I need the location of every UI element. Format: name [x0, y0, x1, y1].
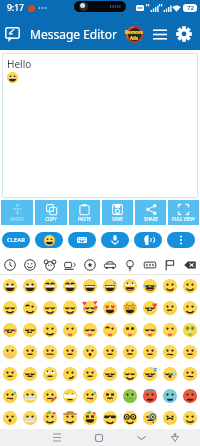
button[interactable]: Emoji 35 [100, 341, 120, 363]
button[interactable]: FULL VIEW [168, 200, 199, 225]
button[interactable]: Emoji 61 [20, 407, 40, 429]
button[interactable]: Emoji 66 [120, 407, 140, 429]
button[interactable]: Emoji 18 [160, 297, 180, 319]
button[interactable]: Emoji 41 [20, 363, 40, 385]
button[interactable]: Emoji 4 [80, 275, 100, 297]
button[interactable]: Emoji 45 [100, 363, 120, 385]
button[interactable]: Assistant [164, 429, 186, 446]
button[interactable]: Backspace [180, 257, 200, 273]
button[interactable]: Emoji 60 [0, 407, 20, 429]
button[interactable]: Emoji 1 [20, 275, 40, 297]
button[interactable]: Back [130, 429, 152, 446]
button[interactable]: Emoji 62 [40, 407, 60, 429]
button[interactable]: Emoji 14 [80, 297, 100, 319]
button[interactable]: Emoji 32 [40, 341, 60, 363]
button[interactable]: Emoji 54 [80, 385, 100, 407]
button[interactable]: Emoji 33 [60, 341, 80, 363]
button[interactable]: Emoji 6 [120, 275, 140, 297]
button[interactable]: Emoji 55 [100, 385, 120, 407]
button[interactable]: Emoji 16 [120, 297, 140, 319]
button[interactable]: Recent [0, 257, 20, 273]
button[interactable]: Animals [40, 257, 60, 273]
button[interactable]: Keyboard [68, 232, 96, 248]
button[interactable]: Emoji 21 [20, 319, 40, 341]
button[interactable]: Emoji 28 [160, 319, 180, 341]
button[interactable]: Emoji 11 [20, 297, 40, 319]
button[interactable]: Emoji 49 [180, 363, 200, 385]
button[interactable]: Emoji 0 [0, 275, 20, 297]
button[interactable]: Home [88, 429, 110, 446]
staticText: 9:17 [7, 2, 24, 14]
button[interactable]: PASTE [69, 200, 100, 225]
button[interactable]: Emoji 37 [140, 341, 160, 363]
button[interactable]: SAVE [102, 200, 133, 225]
button[interactable]: Emoji 23 [60, 319, 80, 341]
button[interactable]: Emoji 5 [100, 275, 120, 297]
button[interactable]: Emoji 48 [160, 363, 180, 385]
button[interactable]: Emoji 63 [60, 407, 80, 429]
button[interactable]: COPY [35, 200, 67, 225]
button[interactable]: Emoji 30 [0, 341, 20, 363]
button[interactable]: Emoji 10 [0, 297, 20, 319]
button[interactable]: Sports [80, 257, 100, 273]
button[interactable]: Emoji 3 [60, 275, 80, 297]
button[interactable]: Emoji 42 [40, 363, 60, 385]
button[interactable]: Emoji 56 [120, 385, 140, 407]
button[interactable]: Emoji 58 [160, 385, 180, 407]
button[interactable]: Emoji 43 [60, 363, 80, 385]
button[interactable]: Emoji 65 [100, 407, 120, 429]
button[interactable]: Emoji 34 [80, 341, 100, 363]
button[interactable]: Emoji 50 [0, 385, 20, 407]
button[interactable]: Emoji 52 [40, 385, 60, 407]
button[interactable]: Emoji 39 [180, 341, 200, 363]
button[interactable]: Emoji 26 [120, 319, 140, 341]
button[interactable]: Settings [173, 23, 195, 45]
button[interactable]: Emoji 51 [20, 385, 40, 407]
button[interactable]: Flags [160, 257, 180, 273]
button[interactable]: Emoji 44 [80, 363, 100, 385]
button[interactable]: Emoji 64 [80, 407, 100, 429]
button[interactable]: Emoji 12 [40, 297, 60, 319]
button[interactable]: Emoji 2 [40, 275, 60, 297]
button[interactable]: Menu [150, 24, 170, 44]
button[interactable]: Emoji 20 [0, 319, 20, 341]
button[interactable]: Recents [46, 429, 68, 446]
button[interactable]: CLEAR [2, 232, 30, 248]
button[interactable]: Emoji 15 [100, 297, 120, 319]
button[interactable]: Smileys [20, 257, 40, 273]
button[interactable]: Travel [100, 257, 120, 273]
button[interactable]: Remove Ads [125, 25, 144, 44]
button[interactable]: Emoji 25 [100, 319, 120, 341]
button[interactable]: Emoji 68 [160, 407, 180, 429]
button[interactable]: Emoji [35, 232, 63, 248]
button[interactable]: Emoji 22 [40, 319, 60, 341]
button[interactable]: Emoji 57 [140, 385, 160, 407]
button[interactable]: Emoji 46 [120, 363, 140, 385]
button[interactable]: Undo [1, 200, 33, 225]
button[interactable]: Emoji 17 [140, 297, 160, 319]
button[interactable]: Emoji 53 [60, 385, 80, 407]
button[interactable]: Emoji 7 [140, 275, 160, 297]
button[interactable]: Emoji 31 [20, 341, 40, 363]
button[interactable]: Food [60, 257, 80, 273]
button[interactable]: Emoji 9 [180, 275, 200, 297]
button[interactable]: More options [167, 232, 195, 248]
button[interactable]: Emoji 59 [180, 385, 200, 407]
button[interactable]: Emoji 69 [180, 407, 200, 429]
button[interactable]: Emoji 38 [160, 341, 180, 363]
button[interactable]: Emoji 29 [180, 319, 200, 341]
button[interactable]: Text to speech [134, 232, 162, 248]
button[interactable]: Emoji 40 [0, 363, 20, 385]
button[interactable]: Emoji 27 [140, 319, 160, 341]
button[interactable]: Emoji 36 [120, 341, 140, 363]
button[interactable]: Voice input [101, 232, 129, 248]
button[interactable]: Emoji 24 [80, 319, 100, 341]
button[interactable]: Objects [120, 257, 140, 273]
button[interactable]: Emoji 19 [180, 297, 200, 319]
button[interactable]: Emoji 67 [140, 407, 160, 429]
button[interactable]: Emoji 47 [140, 363, 160, 385]
button[interactable]: SHARE [135, 200, 166, 225]
button[interactable]: Emoji 13 [60, 297, 80, 319]
button[interactable]: Symbols [140, 257, 160, 273]
button[interactable]: Emoji 8 [160, 275, 180, 297]
